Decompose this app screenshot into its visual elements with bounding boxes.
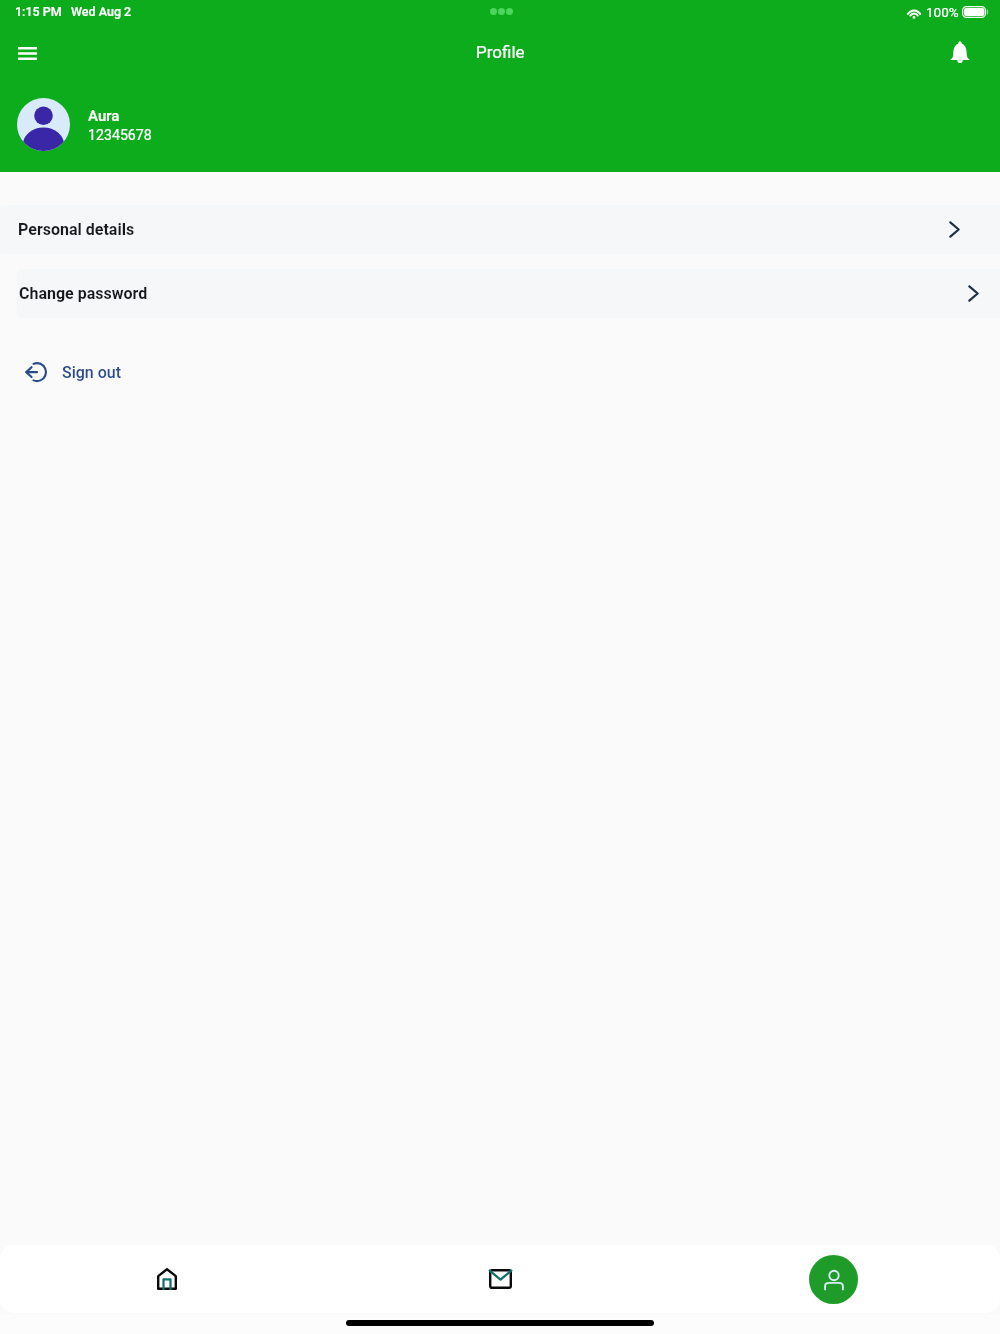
button[interactable]: Menu: [7, 32, 47, 72]
button[interactable]: Profile: [667, 1245, 1000, 1313]
staticText: Aura: [88, 107, 120, 125]
staticText: 100%: [926, 4, 959, 20]
button[interactable]: Home: [0, 1245, 334, 1313]
staticText: Profile: [476, 42, 525, 62]
button[interactable]: Sign out: [24, 359, 122, 385]
button[interactable]: Mail: [334, 1245, 667, 1313]
button[interactable]: Notifications: [940, 32, 980, 72]
staticText: 1:15 PM Wed Aug 2: [15, 4, 132, 19]
staticText: Personal details: [18, 220, 135, 239]
button[interactable]: Personal details: [0, 205, 1000, 254]
staticText: 12345678: [88, 127, 152, 144]
staticText: Sign out: [62, 363, 122, 382]
button[interactable]: Change password: [17, 269, 1000, 318]
staticText: Change password: [19, 284, 148, 303]
